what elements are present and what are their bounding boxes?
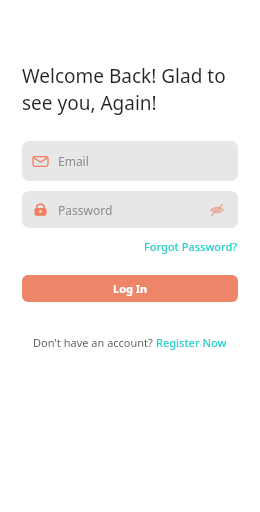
button[interactable]: Email <box>22 141 238 181</box>
staticText: Don't have an account? <box>33 335 156 350</box>
button[interactable]: Forgot Password? <box>144 236 238 257</box>
staticText: Forgot Password? <box>144 239 238 254</box>
button[interactable]: Show password <box>207 200 227 220</box>
staticText: Log In <box>113 281 148 296</box>
staticText: Welcome Back! Glad to see you, Again! <box>22 63 238 116</box>
staticText: Email <box>58 153 89 169</box>
staticText: Password <box>58 202 207 218</box>
button[interactable]: Log In <box>22 275 238 302</box>
button[interactable]: Register Now <box>156 333 227 352</box>
button[interactable]: Password <box>22 191 238 228</box>
staticText: Register Now <box>156 335 227 350</box>
